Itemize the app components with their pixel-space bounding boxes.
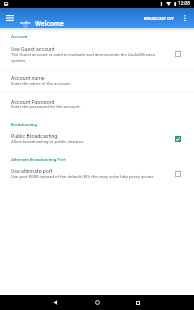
staticText: Account (11, 34, 28, 39)
staticText: Broadcasting (11, 122, 38, 127)
button[interactable]: BROADCAST OFF (142, 8, 176, 28)
button[interactable]: Toggle Use alternate port (170, 166, 186, 182)
button[interactable] (0, 42, 194, 70)
staticText: Welcome (35, 20, 64, 28)
staticText: Account Password (11, 99, 55, 105)
staticText: BROADCAST OFF (144, 16, 174, 20)
button[interactable]: Toggle Use Guest account (170, 46, 186, 62)
staticText: 12:08 (178, 1, 190, 7)
button[interactable] (0, 129, 194, 148)
button[interactable]: Back (41, 295, 69, 310)
button[interactable]: Home (83, 295, 111, 310)
staticText: The Guest account is used to evaluate an… (11, 52, 164, 63)
staticText: Use port 8080 instead of the default (80… (11, 174, 164, 179)
staticText: Enter the password for the account. (11, 104, 164, 109)
staticText: Enter the name of the account. (11, 81, 164, 86)
button[interactable] (0, 164, 194, 183)
staticText: Public Broadcasting (11, 133, 58, 139)
staticText: Allow broadcasting to public streams (11, 139, 164, 144)
staticText: Alternate Broadcasting Port (11, 157, 66, 162)
staticText: Use Guest account (11, 46, 55, 52)
button[interactable]: Toggle Public Broadcasting (170, 131, 186, 147)
button[interactable]: Recent apps (124, 295, 152, 310)
staticText: audio (20, 20, 31, 25)
button[interactable] (0, 70, 194, 92)
staticText: Use alternate port (11, 168, 53, 174)
button[interactable]: Navigation menu (0, 8, 20, 28)
staticText: Account name (11, 75, 45, 81)
button[interactable]: More options (178, 8, 191, 28)
button[interactable] (0, 93, 194, 114)
